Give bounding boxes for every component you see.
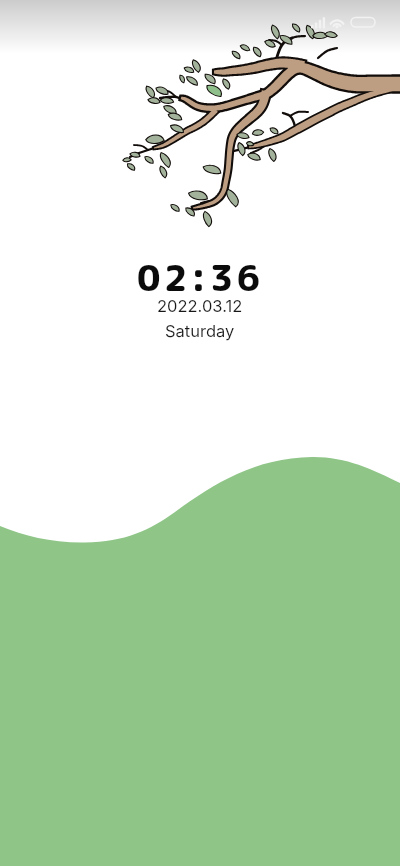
staticText: 02:36 [137,252,264,302]
staticText: Saturday [165,321,235,341]
staticText: 2022.03.12 [157,296,243,316]
